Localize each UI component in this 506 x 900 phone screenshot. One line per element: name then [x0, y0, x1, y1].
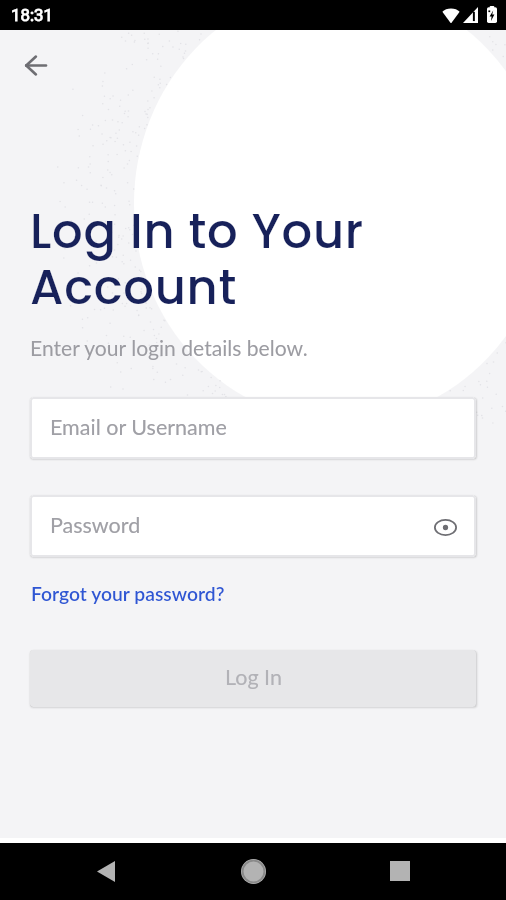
staticText: Forgot your password? [31, 582, 225, 605]
button[interactable]: Back [82, 847, 130, 895]
staticText: Log In [225, 664, 282, 690]
button[interactable]: Home [229, 847, 277, 895]
staticText: Enter your login details below. [30, 335, 308, 360]
button[interactable]: Back [13, 43, 57, 87]
staticText: Email or Username [50, 414, 227, 440]
button[interactable]: Recent apps [376, 847, 424, 895]
button[interactable]: Email or Username [30, 397, 476, 459]
staticText: 18:31 [11, 5, 53, 25]
button[interactable]: Show password [430, 511, 460, 541]
button[interactable]: Log In [30, 650, 476, 707]
staticText: Log In to Your Account [30, 198, 364, 320]
staticText: Password [50, 512, 141, 538]
button[interactable]: Password [30, 495, 476, 557]
button[interactable]: Forgot your password? [31, 582, 225, 605]
